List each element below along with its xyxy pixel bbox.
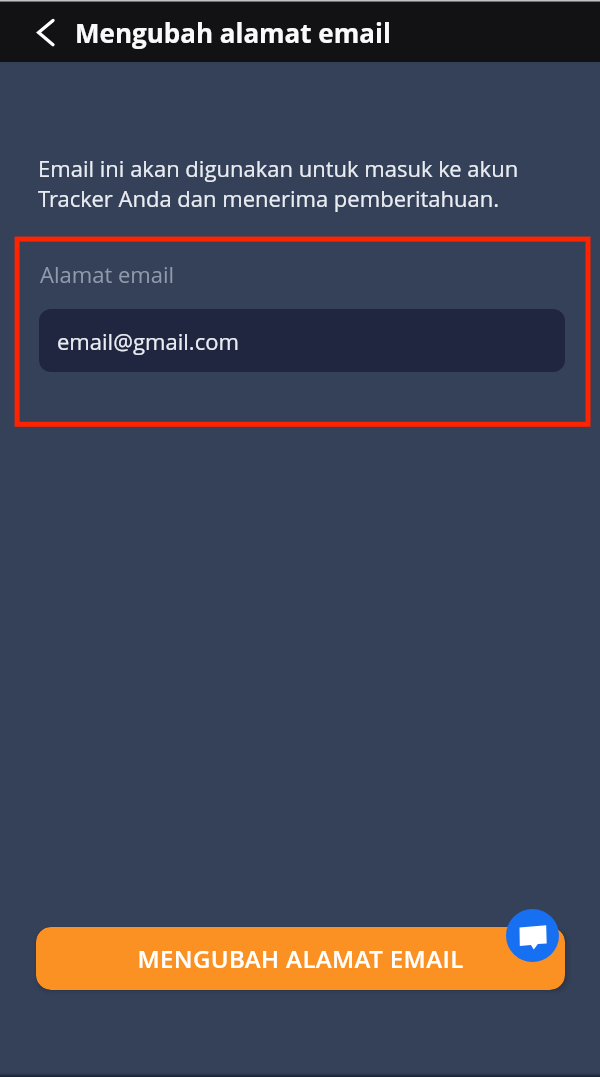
button[interactable]: Open chat support [506, 909, 559, 962]
staticText: Email ini akan digunakan untuk masuk ke … [38, 153, 519, 214]
button[interactable]: email@gmail.com [39, 309, 565, 372]
staticText: Alamat email [40, 259, 175, 289]
staticText: MENGUBAH ALAMAT EMAIL [137, 942, 464, 975]
staticText: email@gmail.com [57, 326, 239, 356]
staticText: Mengubah alamat email [75, 15, 391, 50]
button[interactable]: MENGUBAH ALAMAT EMAIL [36, 927, 565, 990]
button[interactable]: Back [16, 0, 76, 62]
